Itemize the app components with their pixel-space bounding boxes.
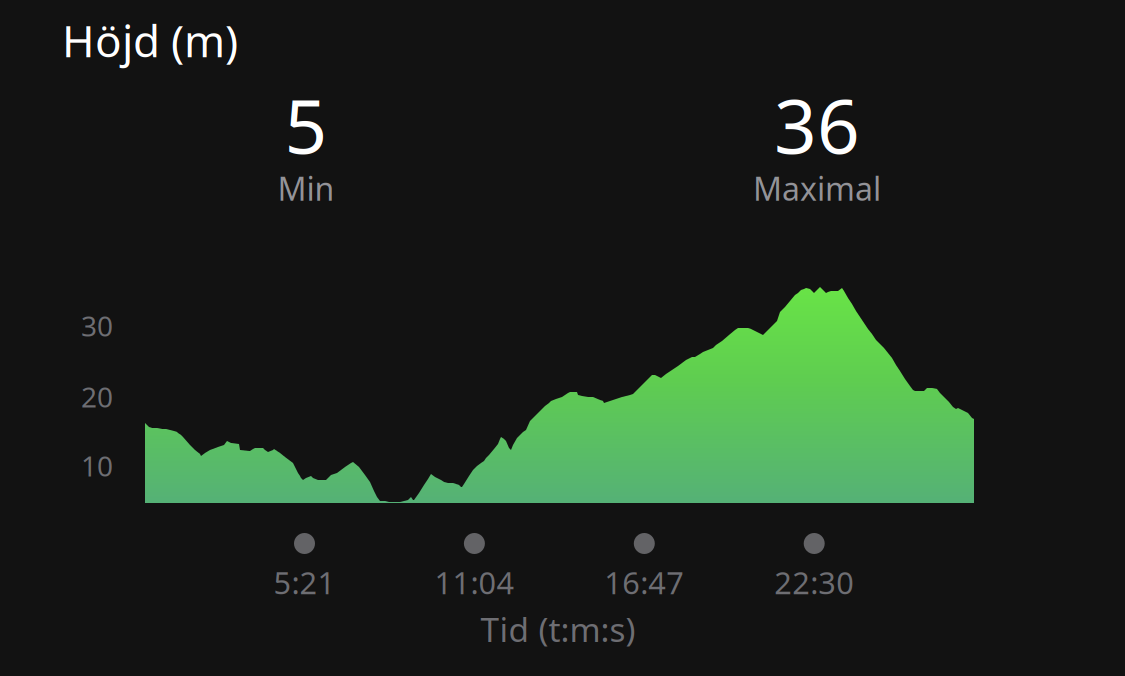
staticText: 5 [284,75,327,174]
staticText: 10 [81,447,113,484]
staticText: 36 [774,75,860,174]
staticText: Min [277,167,334,209]
staticText: 11:04 [434,562,514,603]
staticText: 5:21 [273,562,335,603]
staticText: Tid (t:m:s) [480,607,635,651]
staticText: Höjd (m) [62,11,238,69]
staticText: 30 [81,307,113,344]
staticText: 16:47 [604,562,684,603]
staticText: 22:30 [774,562,854,603]
staticText: Maximal [753,167,881,209]
staticText: 20 [81,378,113,415]
